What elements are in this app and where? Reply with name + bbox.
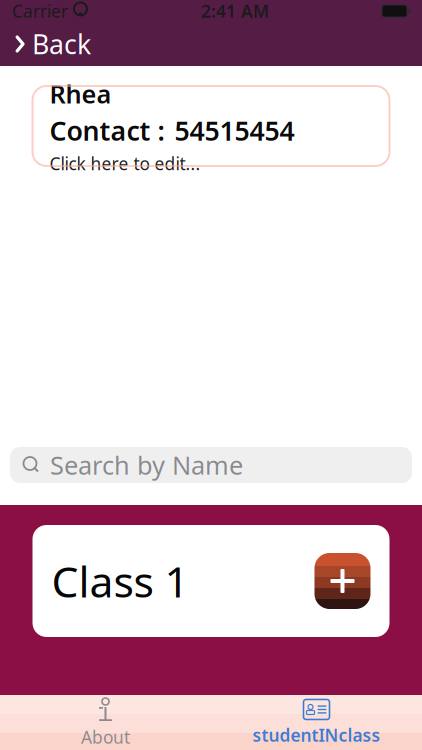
button[interactable]: Rhea — [32, 86, 389, 166]
staticText: Class 1 — [51, 553, 188, 609]
button[interactable]: Search by Name — [10, 447, 412, 483]
staticText: About — [81, 725, 130, 748]
staticText: Rhea — [49, 77, 111, 111]
staticText: Carrier — [12, 0, 68, 22]
staticText: 2:41 AM — [201, 0, 269, 22]
button[interactable]: About — [0, 695, 211, 750]
staticText: Search by Name — [50, 448, 243, 482]
staticText: Click here to edit... — [49, 152, 200, 175]
staticText: studentINclass — [252, 723, 380, 746]
staticText: 54515454 — [174, 113, 294, 148]
staticText: Back — [32, 26, 91, 62]
button[interactable]: studentINclass — [211, 695, 422, 750]
button[interactable]: Back — [0, 18, 105, 70]
staticText: Contact : — [49, 113, 164, 148]
button[interactable]: Class 1 — [32, 525, 389, 637]
